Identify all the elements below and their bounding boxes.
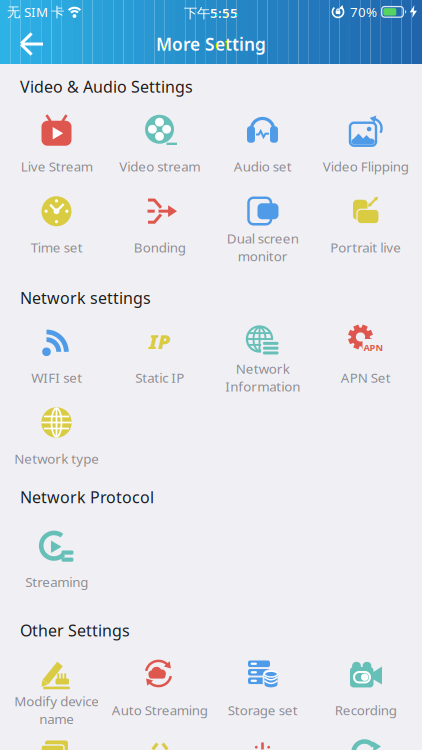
- button[interactable]: Reset: [314, 738, 417, 750]
- staticText: 下午5:55: [184, 4, 238, 22]
- staticText: Video Flipping: [322, 157, 408, 175]
- staticText: Time set: [30, 238, 82, 256]
- staticText: 70%: [350, 3, 377, 21]
- staticText: Network type: [14, 450, 99, 467]
- button[interactable]: Code setting: [108, 738, 211, 750]
- button[interactable]: Back: [19, 29, 46, 59]
- staticText: Other Settings: [20, 620, 130, 641]
- staticText: Video & Audio Settings: [20, 76, 193, 97]
- staticText: Network Protocol: [20, 486, 154, 508]
- button[interactable]: Bonding: [108, 194, 211, 261]
- staticText: Bonding: [133, 238, 185, 256]
- button[interactable]: IP: [108, 324, 211, 391]
- button[interactable]: Recording: [314, 657, 417, 724]
- button[interactable]: Network Information: [211, 324, 314, 391]
- button[interactable]: Portrait live: [314, 194, 417, 261]
- button[interactable]: Live Stream: [5, 113, 108, 180]
- button[interactable]: Time set: [5, 194, 108, 261]
- button[interactable]: APN: [314, 324, 417, 391]
- staticText: WIFI set: [31, 369, 82, 386]
- button[interactable]: WIFI set: [5, 324, 108, 391]
- staticText: Static IP: [135, 369, 184, 386]
- button[interactable]: Antenna setting: [211, 738, 314, 750]
- staticText: Video stream: [119, 157, 200, 175]
- staticText: Network Information: [225, 360, 300, 395]
- staticText: APN Set: [340, 369, 390, 386]
- staticText: Network settings: [20, 287, 151, 308]
- staticText: More Setting: [156, 32, 266, 55]
- staticText: Auto Streaming: [111, 701, 207, 719]
- staticText: 无 SIM 卡: [7, 3, 64, 21]
- button[interactable]: Video stream: [108, 113, 211, 180]
- staticText: Modify device name: [14, 692, 99, 728]
- staticText: Dual screen monitor: [226, 229, 298, 265]
- button[interactable]: Network type: [5, 405, 108, 472]
- button[interactable]: Auto Streaming: [108, 657, 211, 724]
- button[interactable]: Audio set: [211, 113, 314, 180]
- button[interactable]: Modify device name: [5, 657, 108, 724]
- staticText: Streaming: [25, 573, 88, 591]
- button[interactable]: Storage set: [211, 657, 314, 724]
- staticText: IP: [149, 328, 170, 355]
- button[interactable]: Streaming: [5, 529, 108, 596]
- staticText: Audio set: [233, 157, 291, 175]
- staticText: APN: [363, 341, 383, 354]
- staticText: Storage set: [227, 701, 297, 719]
- button[interactable]: Video Flipping: [314, 113, 417, 180]
- button[interactable]: Dual screen monitor: [211, 194, 314, 261]
- staticText: Portrait live: [330, 238, 401, 256]
- staticText: Live Stream: [20, 157, 92, 175]
- button[interactable]: Gallery: [5, 738, 108, 750]
- staticText: Recording: [334, 701, 396, 719]
